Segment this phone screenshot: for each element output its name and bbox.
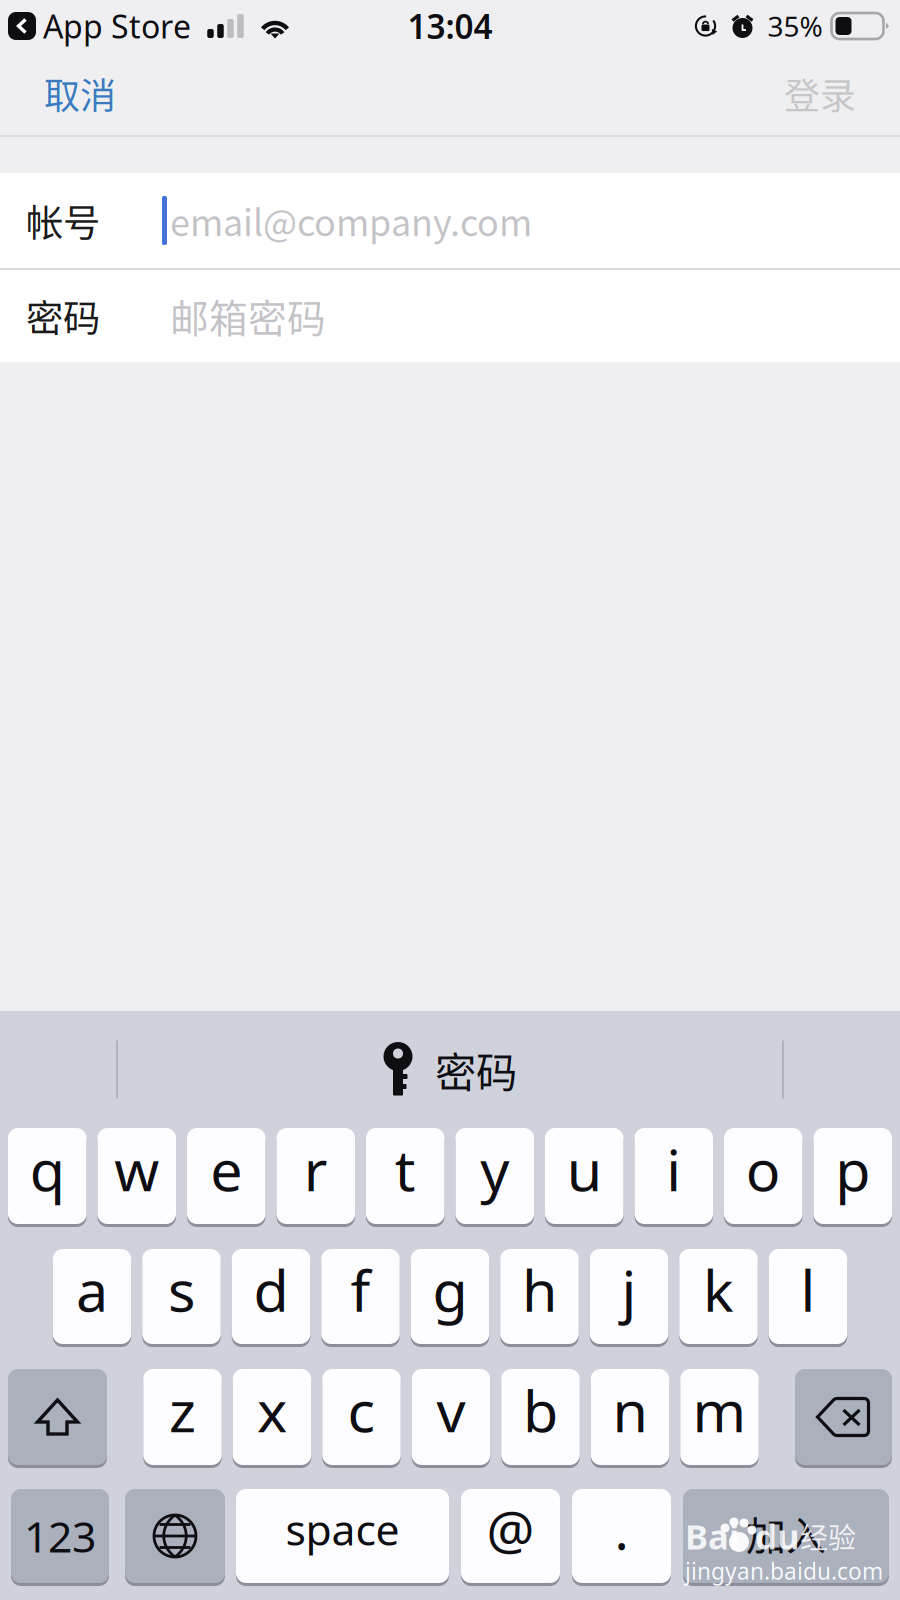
button[interactable]: x — [233, 1369, 311, 1465]
staticText: q — [30, 1131, 65, 1207]
staticText: z — [169, 1372, 196, 1448]
button[interactable]: space — [236, 1489, 449, 1583]
staticText: 邮箱密码 — [170, 288, 326, 344]
staticText: p — [835, 1131, 870, 1207]
staticText: @ — [486, 1494, 534, 1564]
staticText: 加入 — [746, 1504, 826, 1562]
button[interactable]: m — [680, 1369, 759, 1465]
button[interactable]: i — [634, 1128, 713, 1224]
staticText: c — [347, 1372, 375, 1448]
staticText: 登录 — [784, 67, 856, 119]
staticText: App Store — [43, 5, 191, 47]
button[interactable]: Next keyboard — [125, 1489, 225, 1583]
staticText: u — [567, 1131, 602, 1207]
staticText: k — [703, 1251, 734, 1327]
button[interactable]: o — [724, 1128, 802, 1224]
button[interactable]: s — [142, 1249, 221, 1344]
button[interactable]: Delete — [795, 1369, 892, 1465]
button[interactable]: n — [591, 1369, 669, 1465]
staticText: l — [800, 1251, 815, 1327]
staticText: e — [210, 1131, 242, 1207]
staticText: space — [285, 1501, 399, 1557]
button[interactable]: p — [813, 1128, 892, 1224]
staticText: b — [523, 1372, 558, 1448]
button[interactable]: r — [276, 1128, 355, 1224]
staticText: h — [522, 1251, 557, 1327]
button[interactable]: l — [769, 1249, 847, 1344]
staticText: n — [612, 1372, 647, 1448]
button[interactable]: 帐号 — [0, 173, 900, 268]
staticText: s — [168, 1251, 195, 1327]
button[interactable]: App Store — [8, 0, 191, 53]
staticText: jingyan.baidu.com — [685, 1556, 883, 1586]
button[interactable]: d — [232, 1249, 310, 1344]
button[interactable]: f — [321, 1249, 400, 1344]
button[interactable]: y — [455, 1128, 534, 1224]
staticText: t — [395, 1131, 416, 1207]
staticText: . — [614, 1494, 628, 1564]
button[interactable]: 取消 — [24, 51, 136, 135]
button[interactable]: 加入 — [683, 1489, 889, 1583]
staticText: g — [432, 1251, 467, 1327]
staticText: i — [666, 1131, 681, 1207]
button[interactable]: j — [590, 1249, 668, 1344]
staticText: x — [257, 1372, 287, 1448]
staticText: 经验 — [800, 1516, 856, 1556]
staticText: 密码 — [26, 289, 100, 343]
staticText: email@company.com — [170, 194, 532, 246]
staticText: v — [436, 1372, 465, 1448]
staticText: du — [755, 1513, 800, 1559]
button[interactable]: g — [411, 1249, 489, 1344]
button[interactable]: w — [97, 1128, 176, 1224]
staticText: m — [692, 1372, 746, 1448]
staticText: w — [114, 1131, 159, 1207]
button[interactable]: b — [501, 1369, 580, 1465]
staticText: 123 — [24, 1508, 96, 1564]
button[interactable]: 密码 — [0, 270, 900, 362]
button[interactable]: 123 — [11, 1489, 109, 1583]
button[interactable]: Shift — [8, 1369, 107, 1465]
staticText: 取消 — [44, 67, 116, 119]
staticText: 密码 — [435, 1040, 517, 1099]
button[interactable]: z — [143, 1369, 222, 1465]
staticText: r — [304, 1131, 328, 1207]
button[interactable]: t — [366, 1128, 444, 1224]
staticText: 35% — [767, 7, 822, 45]
button[interactable]: c — [322, 1369, 401, 1465]
staticText: 13:04 — [407, 4, 492, 48]
staticText: o — [746, 1131, 781, 1207]
staticText: d — [253, 1251, 288, 1327]
button[interactable]: a — [53, 1249, 131, 1344]
staticText: j — [621, 1251, 636, 1327]
staticText: a — [76, 1251, 108, 1327]
button[interactable]: u — [545, 1128, 623, 1224]
button[interactable]: q — [8, 1128, 86, 1224]
button[interactable]: . — [572, 1489, 671, 1583]
staticText: y — [480, 1131, 509, 1207]
button[interactable]: @ — [461, 1489, 560, 1583]
button[interactable]: 登录 — [764, 51, 876, 135]
button[interactable]: e — [187, 1128, 265, 1224]
button[interactable]: v — [412, 1369, 490, 1465]
staticText: f — [350, 1251, 370, 1327]
button[interactable]: 密码 — [359, 1030, 541, 1109]
button[interactable]: k — [679, 1249, 758, 1344]
button[interactable]: h — [500, 1249, 579, 1344]
staticText: Bai — [685, 1513, 739, 1559]
staticText: 帐号 — [26, 193, 100, 248]
